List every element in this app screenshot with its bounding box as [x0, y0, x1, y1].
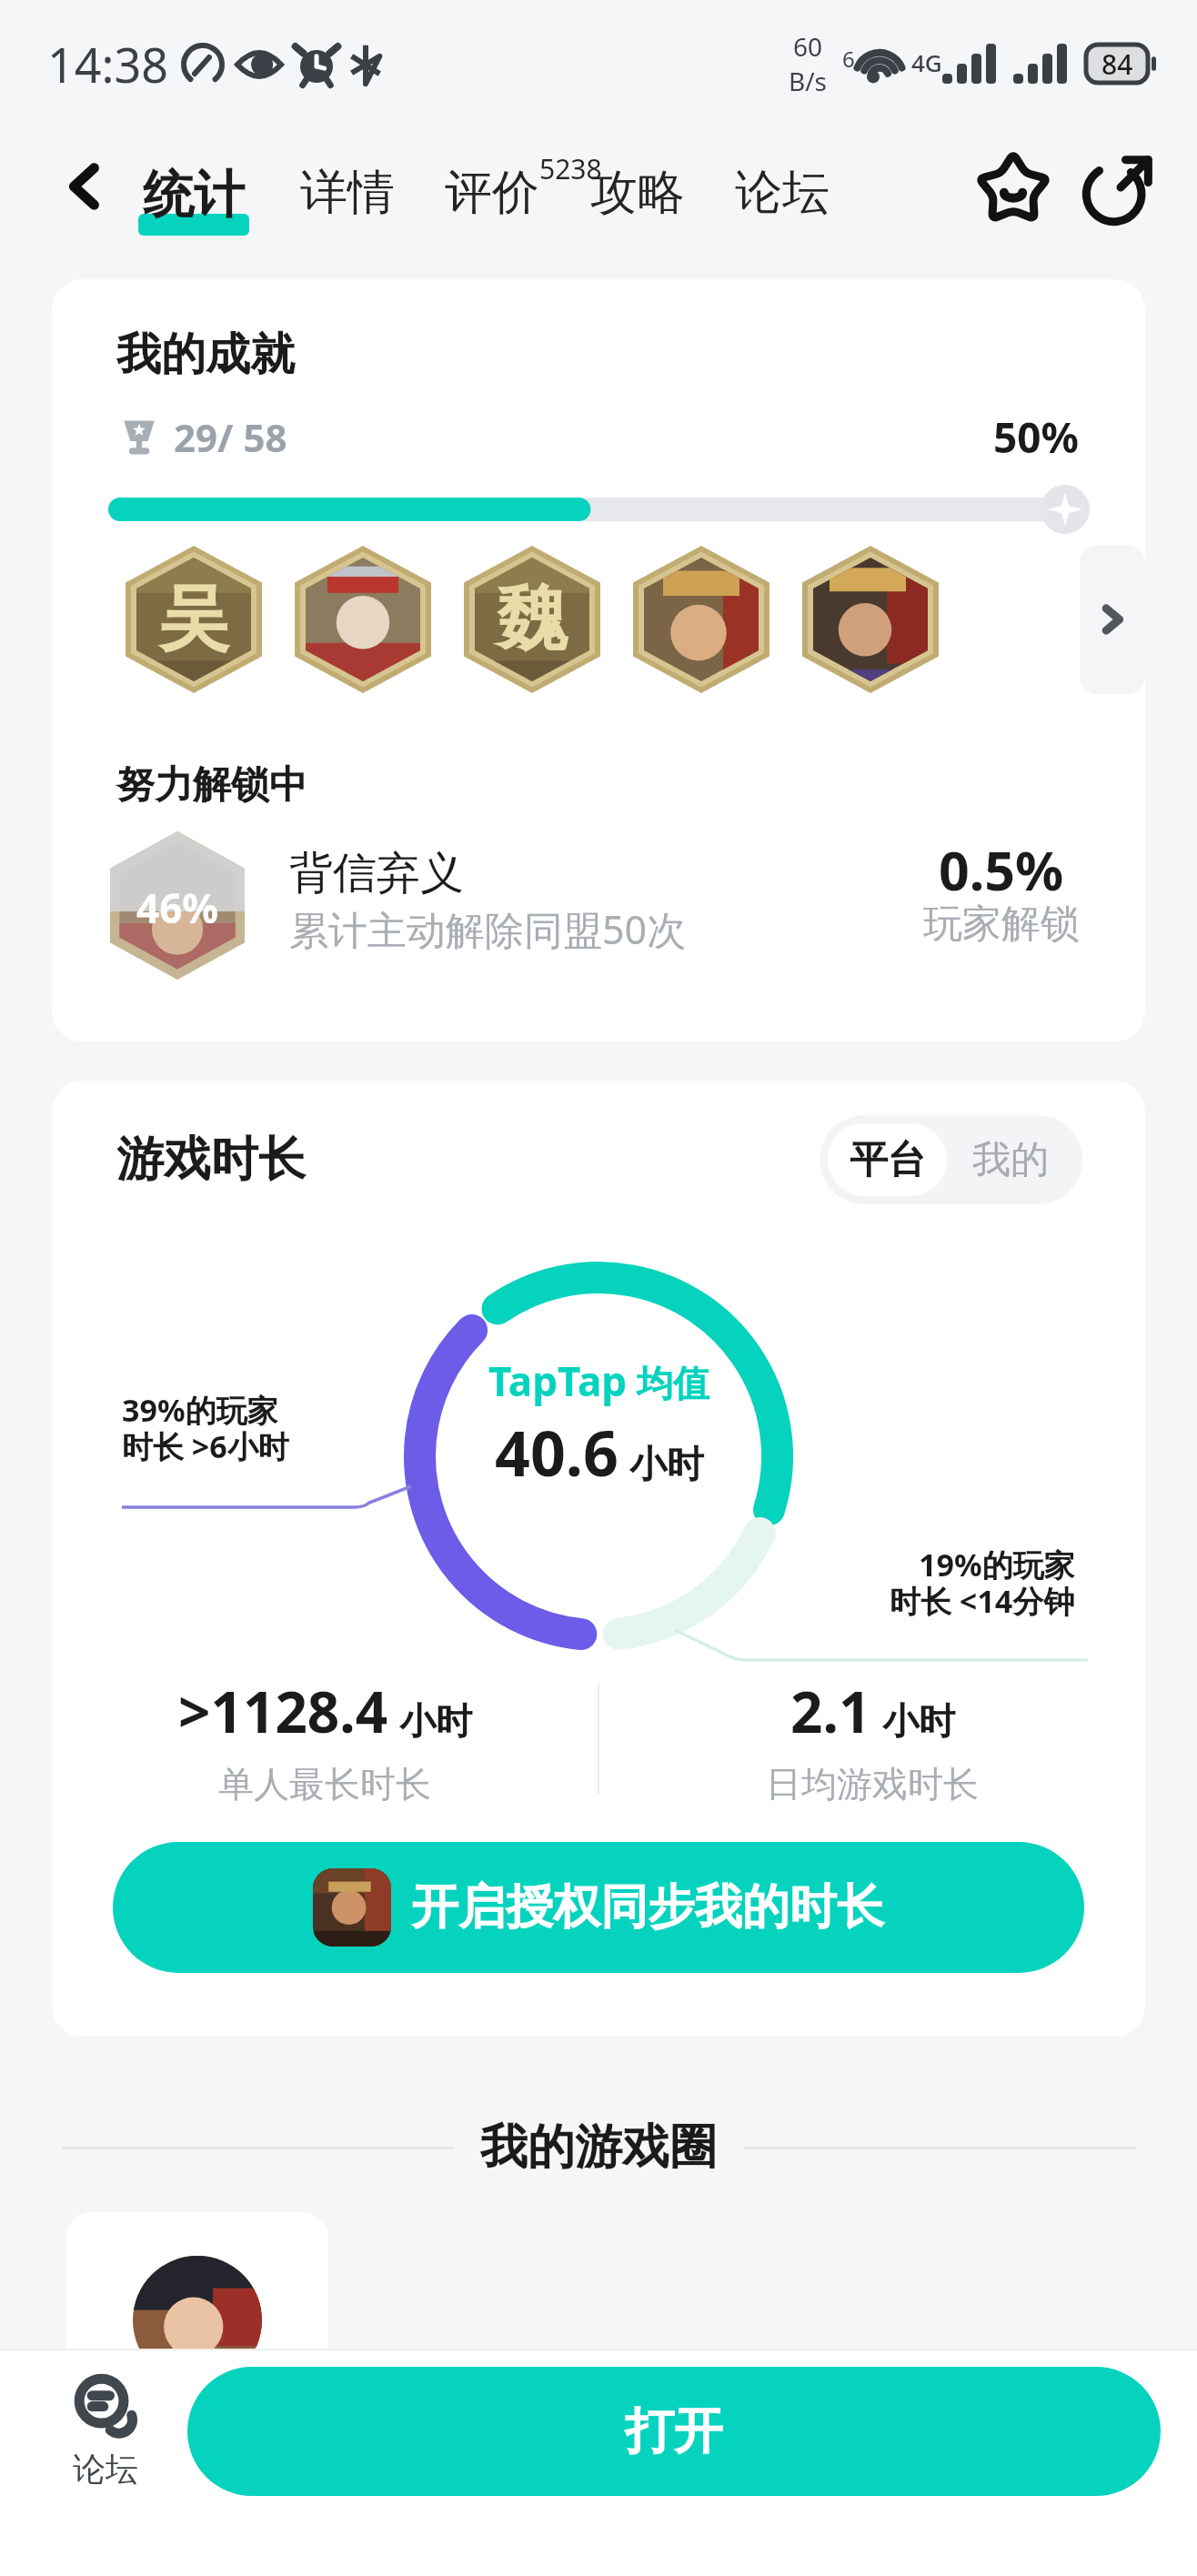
button[interactable]: 论坛 — [36, 2374, 175, 2490]
staticText: 单人最长时长 — [218, 1762, 431, 1806]
staticText: 打开 — [625, 2400, 723, 2462]
staticText: 6 — [842, 44, 855, 74]
staticText: 魏 — [497, 575, 568, 664]
staticText: 29/ 58 — [174, 411, 287, 463]
staticText: 小时 — [882, 1698, 955, 1744]
staticText: 评价 — [445, 163, 539, 223]
staticText: 论坛 — [735, 163, 830, 223]
staticText: 时长 <14分钟 — [890, 1580, 1075, 1622]
staticText: 0.5% — [939, 833, 1064, 906]
staticText: 60 — [793, 29, 823, 64]
staticText: 吴 — [158, 575, 229, 664]
button[interactable]: Back — [55, 156, 115, 216]
staticText: 努力解锁中 — [116, 761, 307, 810]
button[interactable]: Favorite — [970, 144, 1057, 231]
staticText: 统计 — [143, 163, 245, 227]
staticText: 游戏时长 — [116, 1130, 306, 1190]
staticText: 详情 — [300, 163, 395, 223]
staticText: 日均游戏时长 — [766, 1762, 979, 1806]
button[interactable]: More achievements — [1080, 545, 1145, 694]
staticText: 50% — [993, 408, 1080, 466]
button[interactable]: Achievement badge — [802, 546, 939, 693]
staticText: 背信弃义 — [289, 846, 464, 901]
staticText: 39%的玩家 — [122, 1389, 278, 1431]
button[interactable]: 攻略 — [590, 163, 685, 223]
staticText: 40.6 — [495, 1410, 619, 1494]
button[interactable]: 论坛 — [735, 163, 830, 223]
button[interactable]: 我的 — [947, 1123, 1074, 1196]
staticText: 玩家解锁 — [923, 900, 1080, 949]
staticText: TapTap — [488, 1353, 628, 1408]
staticText: 我的 — [972, 1136, 1049, 1184]
staticText: 时长 >6小时 — [122, 1425, 289, 1467]
staticText: 论坛 — [73, 2449, 138, 2490]
staticText: 我的游戏圈 — [480, 2118, 717, 2178]
staticText: >1128.4 — [178, 1673, 388, 1749]
staticText: 14:38 — [47, 32, 168, 96]
button[interactable] — [66, 2212, 328, 2449]
staticText: 19%的玩家 — [919, 1544, 1075, 1585]
staticText: 46% — [136, 880, 219, 935]
staticText: 4G — [911, 46, 942, 78]
staticText: 均值 — [637, 1361, 709, 1406]
staticText: 攻略 — [590, 163, 685, 223]
button[interactable]: 46% — [110, 831, 1080, 980]
staticText: 我的成就 — [116, 327, 295, 383]
button[interactable]: 统计 — [138, 162, 249, 236]
staticText: 小时 — [399, 1698, 472, 1744]
staticText: B/s — [789, 64, 828, 98]
button[interactable]: Share — [1077, 144, 1164, 231]
button[interactable]: Achievement badge — [295, 546, 431, 693]
staticText: 84 — [1101, 45, 1133, 83]
button[interactable]: Achievement badge — [633, 546, 769, 693]
button[interactable]: Achievement badge — [464, 546, 600, 693]
button[interactable]: 详情 — [300, 163, 395, 223]
staticText: 2.1 — [790, 1673, 871, 1749]
staticText: 5238 — [539, 150, 602, 187]
button[interactable]: 打开 — [187, 2367, 1161, 2496]
staticText: 平台 — [850, 1136, 926, 1184]
button[interactable]: 开启授权同步我的时长 — [113, 1842, 1084, 1973]
button[interactable]: Achievement badge — [126, 546, 262, 693]
staticText: 累计主动解除同盟50次 — [289, 902, 687, 956]
button[interactable]: 评价 — [445, 163, 602, 223]
staticText: 小时 — [629, 1442, 704, 1489]
button[interactable]: 平台 — [828, 1123, 947, 1196]
staticText: 开启授权同步我的时长 — [411, 1877, 884, 1937]
